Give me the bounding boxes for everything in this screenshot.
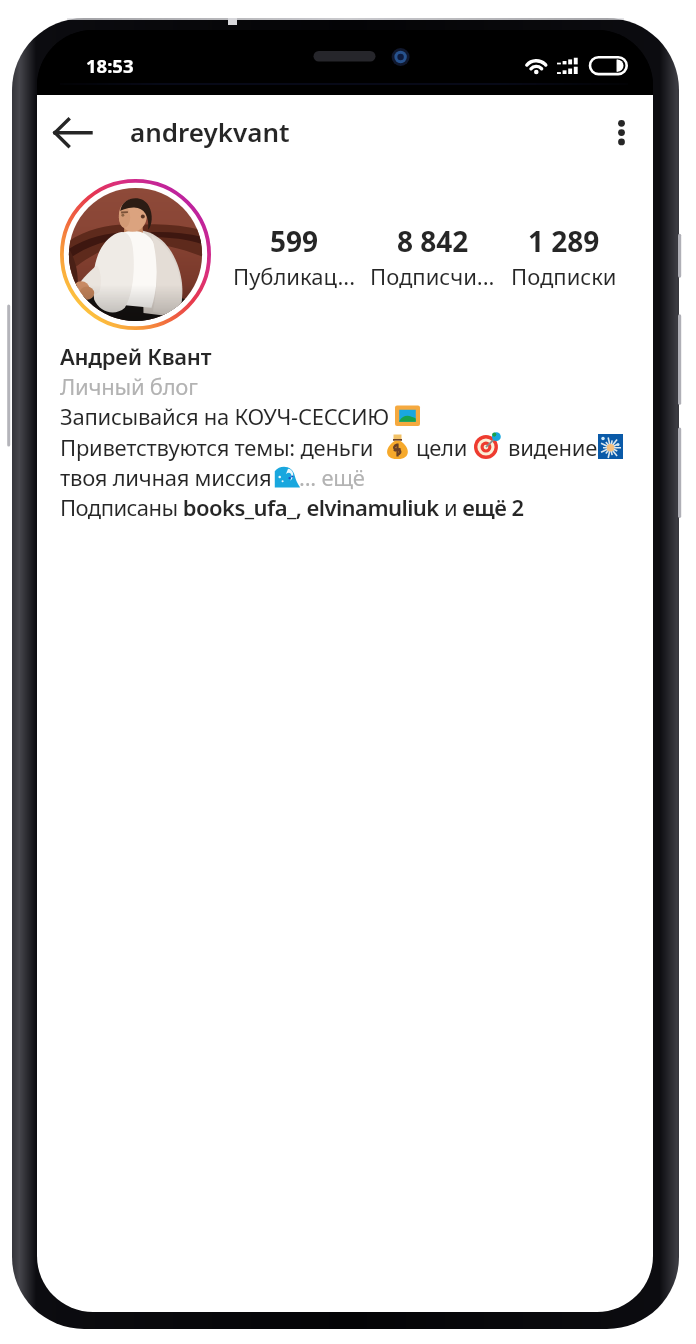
staticText: Подписаны books_ufa_, elvinamuliuk и ещё… [60, 492, 524, 522]
staticText: 8 842 [397, 222, 469, 260]
staticText: 1 289 [528, 222, 600, 260]
staticText: Андрей Квант [60, 341, 212, 371]
staticText: Публикац... [233, 261, 356, 291]
staticText: Подписчи... [370, 261, 495, 291]
staticText: Подписки [511, 261, 617, 291]
staticText: ... ещё [299, 462, 365, 492]
button[interactable]: 8 842 [342, 222, 522, 291]
staticText: цели [416, 432, 468, 462]
button[interactable]: 1 289 [474, 222, 653, 291]
button[interactable]: 599 [204, 222, 384, 291]
button[interactable]: Profile photo [60, 179, 211, 330]
staticText: Личный блог [60, 371, 198, 401]
staticText: Записывайся на КОУЧ-СЕССИЮ [60, 401, 390, 431]
staticText: Приветствуются темы: деньги [60, 432, 374, 462]
button[interactable]: Back [46, 108, 104, 158]
staticText: 599 [270, 222, 319, 260]
staticText: видение [508, 432, 598, 462]
staticText: твоя личная миссия [60, 462, 272, 492]
staticText: andreykvant [130, 114, 290, 149]
button[interactable]: More options [597, 108, 646, 158]
staticText: 18:53 [86, 53, 134, 78]
